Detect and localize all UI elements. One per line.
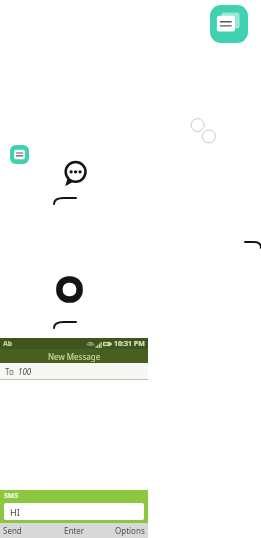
staticText: Ab [3,339,13,349]
button[interactable]: Messages app icon [210,5,248,43]
staticText: To [5,366,14,377]
button[interactable]: HI [4,503,144,520]
button[interactable]: Home button [54,274,85,305]
staticText: 10:31 PM [114,339,145,349]
button[interactable]: Chat bubble [60,158,90,188]
staticText: HI [10,506,20,518]
button[interactable]: Send [3,525,22,536]
staticText: 100 [18,366,32,377]
staticText: New Message [48,351,101,362]
button[interactable]: Enter [64,525,85,536]
button[interactable]: Options [115,525,145,536]
button[interactable]: Messages small icon [10,145,29,164]
staticText: SMS [4,491,19,501]
